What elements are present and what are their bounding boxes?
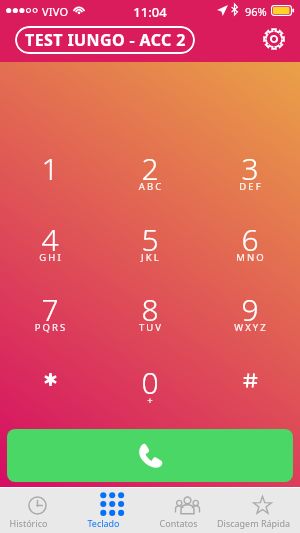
staticText: PQRS	[1, 321, 101, 334]
button[interactable]: Settings	[259, 24, 289, 54]
button[interactable]: 8	[100, 268, 200, 336]
button[interactable]	[200, 338, 300, 406]
button[interactable]: 4	[0, 198, 100, 266]
staticText: 7	[0, 289, 100, 330]
button[interactable]	[0, 338, 100, 406]
staticText: JKL	[101, 251, 201, 264]
button[interactable]: Discagem Rápida	[225, 488, 300, 533]
button[interactable]: Teclado	[75, 488, 150, 533]
button[interactable]: 5	[100, 198, 200, 266]
staticText: Contatos	[141, 517, 216, 529]
staticText: Discagem Rápida	[216, 517, 291, 529]
staticText: 1	[0, 148, 100, 189]
button[interactable]: 6	[200, 198, 300, 266]
button[interactable]: TEST IUNGO - ACC 2	[15, 26, 195, 54]
staticText: 96%	[245, 4, 267, 19]
button[interactable]: 0	[100, 341, 200, 409]
staticText: 2	[100, 148, 200, 189]
button[interactable]: 7	[0, 268, 100, 336]
staticText: 5	[100, 219, 200, 260]
staticText: 6	[200, 219, 300, 260]
staticText: 9	[200, 289, 300, 330]
button[interactable]: Histórico	[0, 488, 75, 533]
staticText: Histórico	[0, 517, 66, 529]
button[interactable]: 2	[100, 127, 200, 195]
staticText: GHI	[1, 251, 101, 264]
staticText: 3	[200, 148, 300, 189]
staticText: TEST IUNGO - ACC 2	[25, 29, 186, 51]
staticText: VIVO	[42, 4, 69, 19]
button[interactable]: 3	[200, 127, 300, 195]
button[interactable]: Contatos	[150, 488, 225, 533]
staticText: +	[101, 394, 201, 407]
button[interactable]: 1	[0, 127, 100, 195]
staticText: 11:04	[0, 3, 300, 21]
staticText: ABC	[101, 180, 201, 193]
staticText: TUV	[101, 321, 201, 334]
button[interactable]: Call	[7, 429, 293, 482]
staticText: 8	[100, 289, 200, 330]
staticText: DEF	[201, 180, 300, 193]
staticText: MNO	[201, 251, 300, 264]
staticText: 0	[100, 362, 200, 403]
staticText: Teclado	[66, 517, 141, 529]
staticText: WXYZ	[201, 321, 300, 334]
button[interactable]: 9	[200, 268, 300, 336]
staticText: 4	[0, 219, 100, 260]
